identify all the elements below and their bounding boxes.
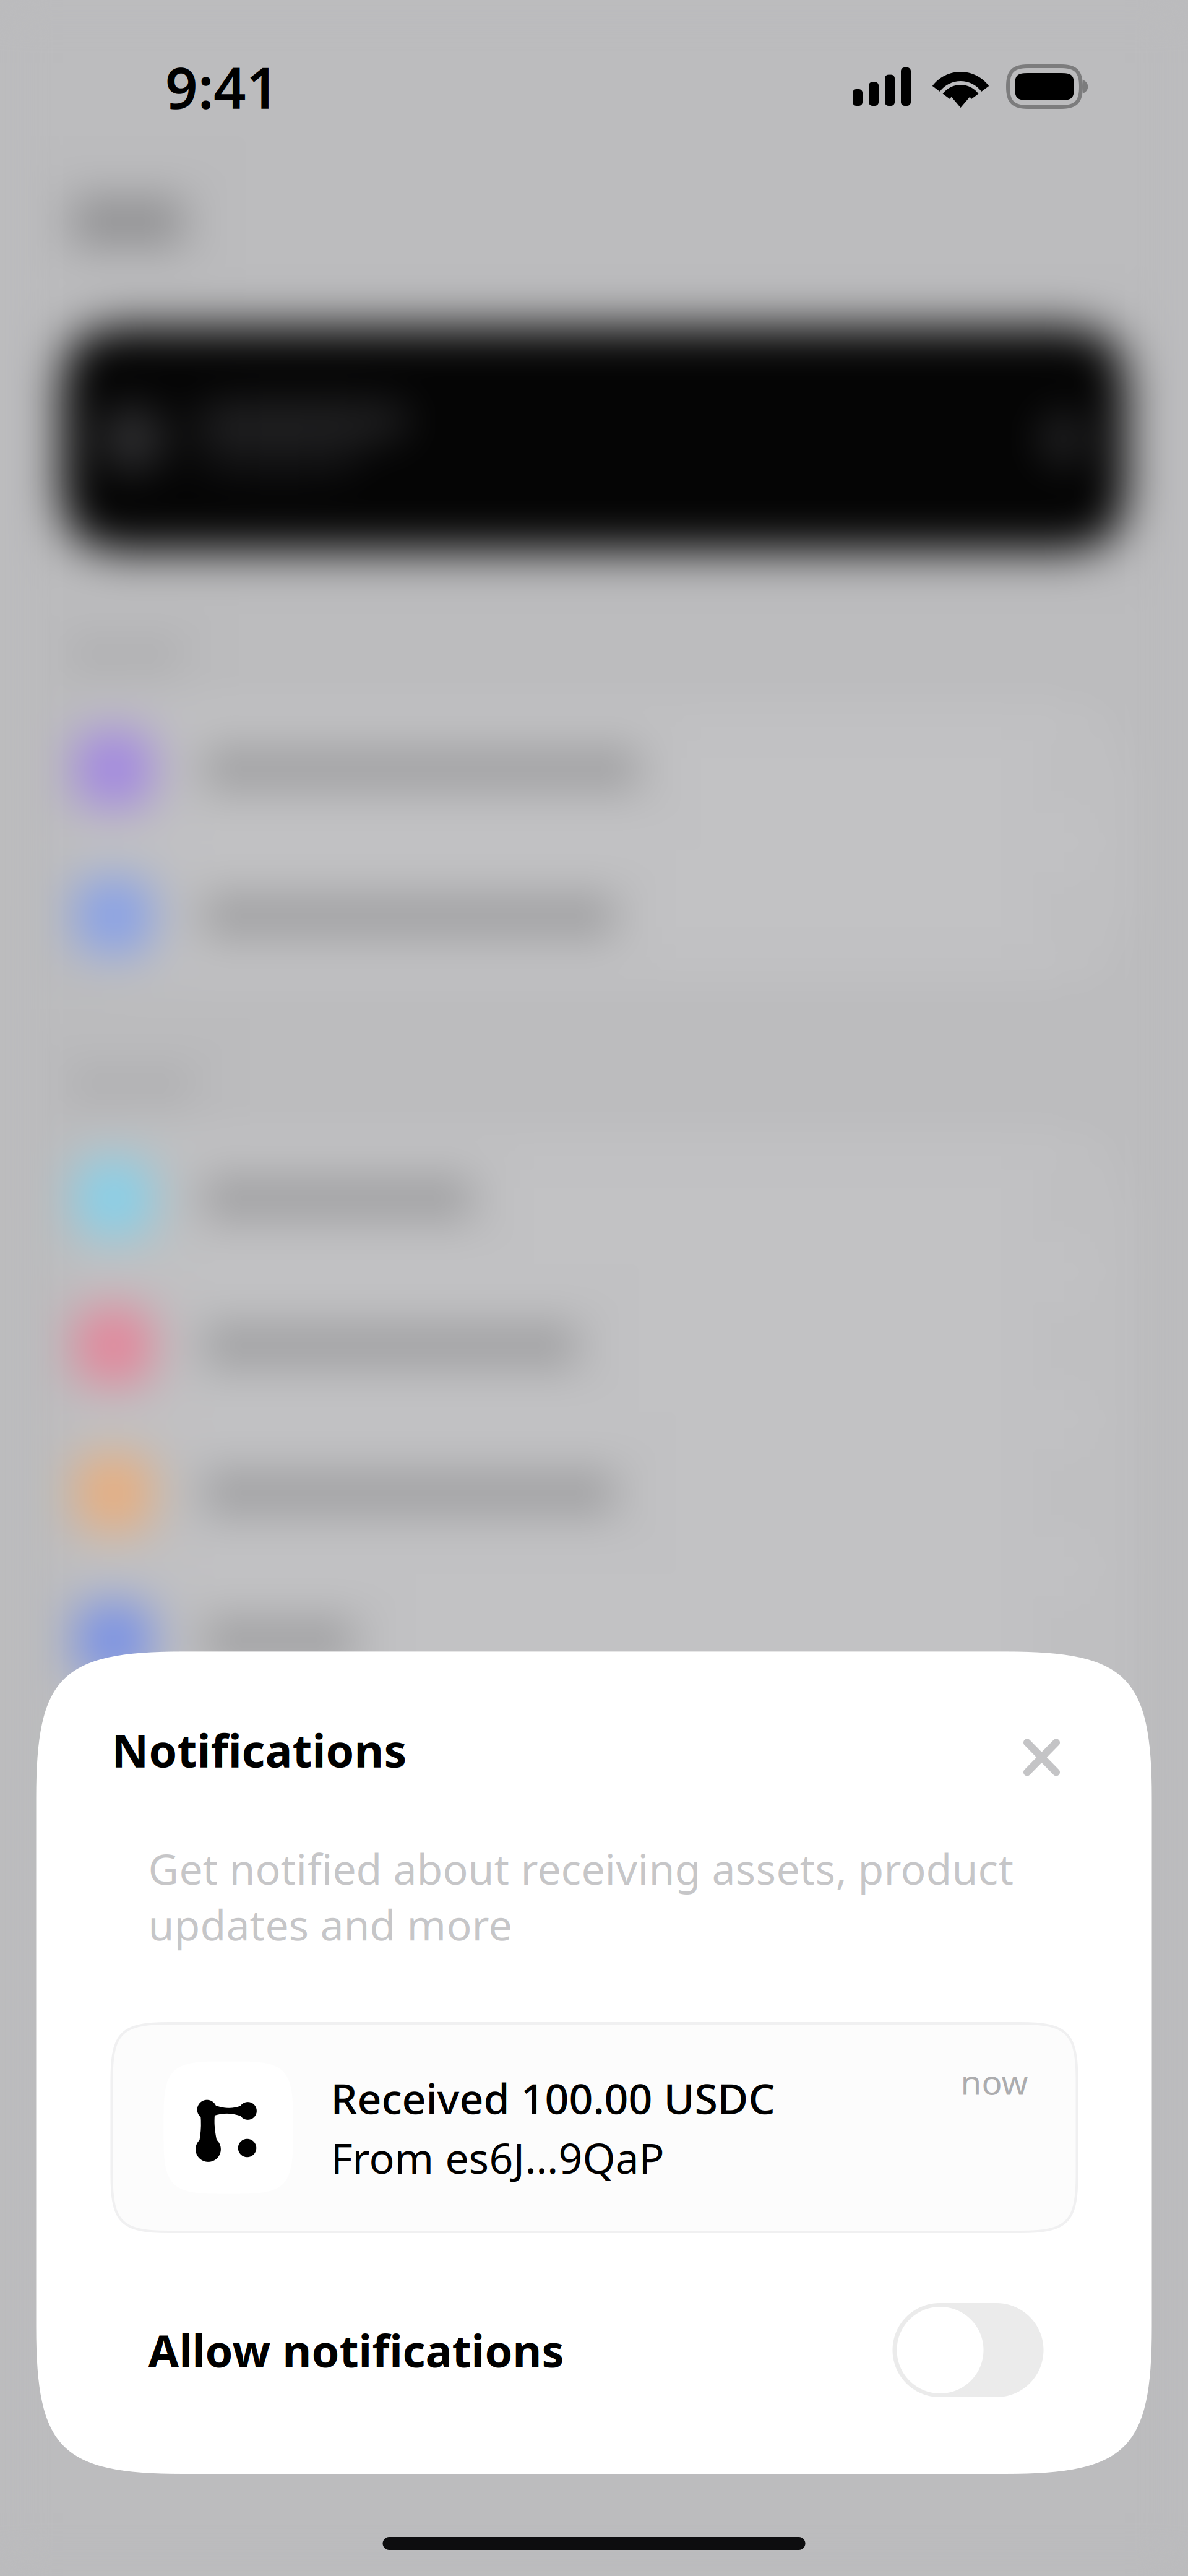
staticText: Received 100.00 USDC bbox=[331, 2070, 775, 2126]
staticText: now bbox=[961, 2059, 1028, 2104]
staticText: Allow notifications bbox=[148, 2321, 564, 2380]
staticText: Get notified about receiving assets, pro… bbox=[148, 1840, 1014, 1952]
staticText: 9:41 bbox=[165, 49, 279, 124]
staticText: From es6J…9QaP bbox=[331, 2129, 664, 2185]
button[interactable]: Close bbox=[1005, 1705, 1079, 1795]
button[interactable]: Allow notifications bbox=[893, 2303, 1044, 2397]
staticText: Notifications bbox=[112, 1720, 407, 1780]
